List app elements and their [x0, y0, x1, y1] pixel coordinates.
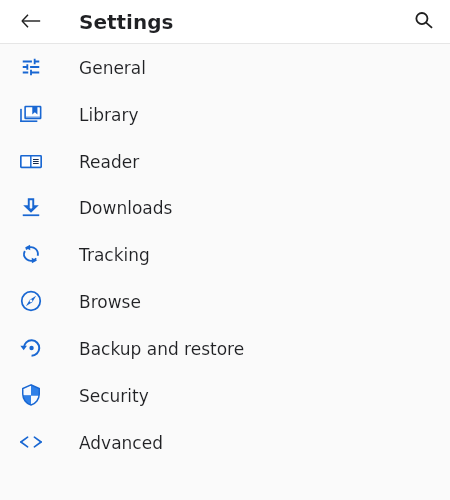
- button[interactable]: Library: [0, 90, 450, 137]
- button[interactable]: Security: [0, 371, 450, 418]
- staticText: Reader: [79, 152, 140, 172]
- button[interactable]: Browse: [0, 277, 450, 324]
- staticText: Browse: [79, 292, 141, 312]
- button[interactable]: Backup and restore: [0, 324, 450, 371]
- staticText: Library: [79, 105, 139, 125]
- button[interactable]: Tracking: [0, 230, 450, 277]
- staticText: Security: [79, 386, 149, 406]
- button[interactable]: Search: [408, 5, 443, 40]
- staticText: Backup and restore: [79, 339, 245, 359]
- staticText: Settings: [79, 10, 174, 33]
- staticText: Downloads: [79, 198, 173, 218]
- button[interactable]: Reader: [0, 137, 450, 184]
- button[interactable]: Back: [13, 3, 48, 38]
- button[interactable]: Advanced: [0, 418, 450, 465]
- button[interactable]: General: [0, 43, 450, 90]
- staticText: General: [79, 58, 146, 78]
- staticText: Advanced: [79, 433, 163, 453]
- button[interactable]: Downloads: [0, 183, 450, 230]
- staticText: Tracking: [79, 245, 150, 265]
